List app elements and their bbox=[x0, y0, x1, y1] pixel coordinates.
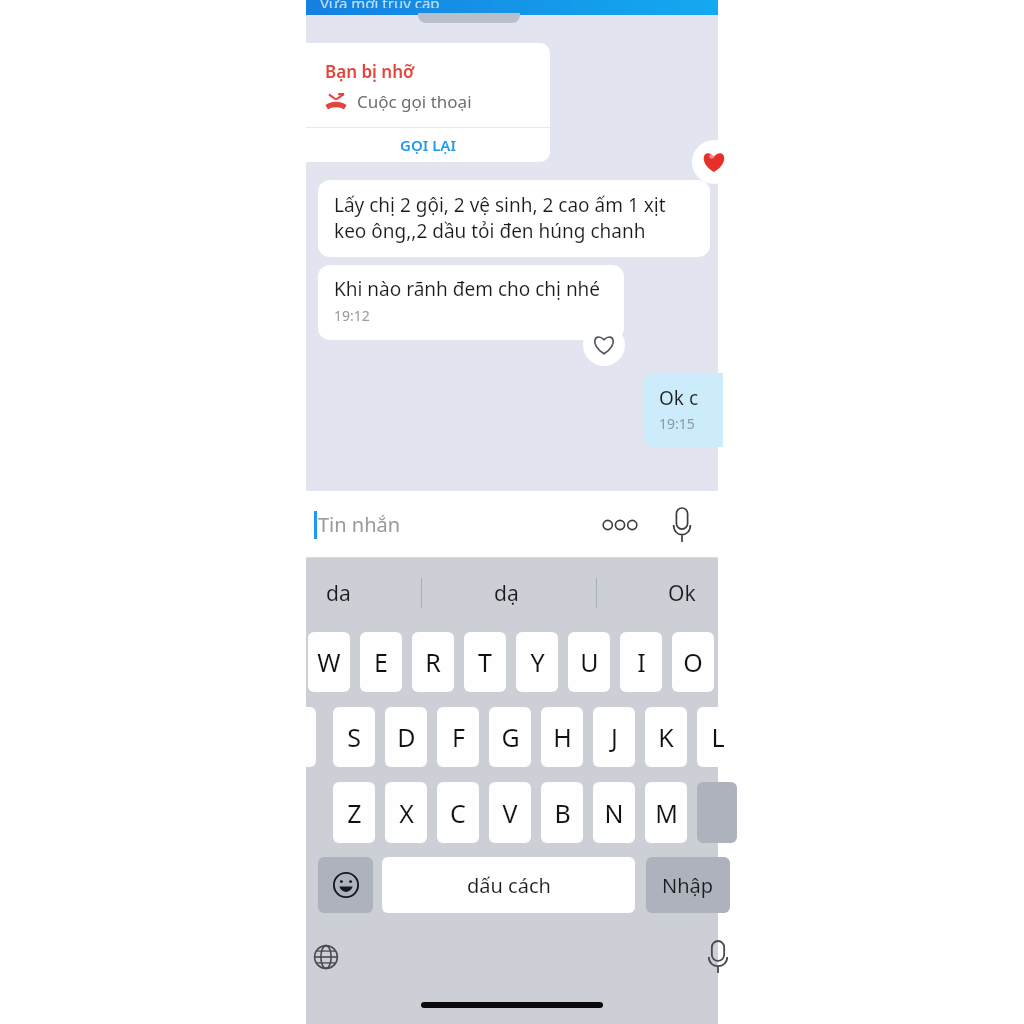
button[interactable]: Khi nào rãnh đem cho chị nhé bbox=[318, 265, 624, 340]
staticText: 19:15 bbox=[659, 414, 695, 433]
staticText: U bbox=[580, 645, 599, 679]
button[interactable]: I bbox=[620, 632, 662, 692]
button[interactable]: H bbox=[541, 707, 583, 767]
staticText: Nhập bbox=[662, 872, 714, 899]
staticText: E bbox=[374, 645, 388, 679]
button[interactable]: Nhập bbox=[646, 857, 730, 913]
button[interactable]: V bbox=[489, 782, 531, 843]
staticText: Z bbox=[347, 796, 362, 830]
button[interactable]: D bbox=[385, 707, 427, 767]
button[interactable]: Ok bbox=[668, 579, 696, 608]
button[interactable] bbox=[294, 707, 316, 767]
button[interactable]: X bbox=[385, 782, 427, 843]
button[interactable]: Emoji bbox=[318, 857, 373, 913]
button[interactable]: G bbox=[489, 707, 531, 767]
staticText: G bbox=[501, 720, 520, 754]
staticText: W bbox=[317, 645, 341, 679]
staticText: GỌI LẠI bbox=[400, 135, 456, 155]
button[interactable]: B bbox=[541, 782, 583, 843]
staticText: Bạn bị nhỡ bbox=[325, 60, 415, 83]
staticText: Khi nào rãnh đem cho chị nhé bbox=[334, 276, 601, 302]
staticText: O bbox=[683, 645, 703, 679]
button[interactable]: S bbox=[333, 707, 375, 767]
button[interactable]: Voice message bbox=[660, 503, 704, 547]
button[interactable]: E bbox=[360, 632, 402, 692]
staticText: D bbox=[397, 720, 416, 754]
staticText: K bbox=[658, 720, 674, 754]
staticText: R bbox=[425, 645, 441, 679]
staticText: Cuộc gọi thoại bbox=[357, 90, 472, 113]
staticText: 19:12 bbox=[334, 306, 370, 325]
button[interactable]: Y bbox=[516, 632, 558, 692]
button[interactable]: J bbox=[593, 707, 635, 767]
button[interactable]: GỌI LẠI bbox=[306, 128, 550, 162]
button[interactable]: C bbox=[437, 782, 479, 843]
staticText: B bbox=[554, 796, 571, 830]
button[interactable]: Heart reaction bbox=[692, 140, 736, 184]
button[interactable]: Change keyboard bbox=[302, 933, 350, 981]
staticText: H bbox=[553, 720, 572, 754]
button[interactable]: More options bbox=[598, 503, 642, 547]
button[interactable]: M bbox=[645, 782, 687, 843]
staticText: T bbox=[478, 645, 492, 679]
button[interactable]: N bbox=[593, 782, 635, 843]
button[interactable]: L bbox=[697, 707, 739, 767]
staticText: C bbox=[450, 796, 466, 830]
button[interactable]: Bạn bị nhỡ bbox=[306, 43, 550, 162]
staticText: I bbox=[637, 645, 646, 679]
staticText: V bbox=[502, 796, 518, 830]
staticText: Ok c bbox=[659, 385, 699, 411]
staticText: L bbox=[711, 720, 725, 754]
staticText: F bbox=[452, 720, 465, 754]
button[interactable]: Lấy chị 2 gội, 2 vệ sinh, 2 cao ấm 1 xịt… bbox=[318, 180, 710, 257]
staticText: dấu cách bbox=[467, 872, 551, 899]
staticText: Vừa mới truy cập bbox=[320, 0, 440, 8]
button[interactable]: F bbox=[437, 707, 479, 767]
staticText: N bbox=[604, 796, 624, 830]
button[interactable]: Z bbox=[333, 782, 375, 843]
button[interactable]: dấu cách bbox=[382, 857, 635, 913]
button[interactable]: dạ bbox=[494, 579, 519, 608]
button[interactable]: T bbox=[464, 632, 506, 692]
staticText: Tin nhắn bbox=[318, 511, 401, 538]
button[interactable]: Ok c bbox=[643, 373, 723, 447]
button[interactable]: O bbox=[672, 632, 714, 692]
staticText: J bbox=[611, 720, 618, 754]
button[interactable]: Like bbox=[583, 324, 625, 366]
button[interactable]: R bbox=[412, 632, 454, 692]
staticText: Y bbox=[530, 645, 545, 679]
button[interactable]: W bbox=[308, 632, 350, 692]
staticText: Lấy chị 2 gội, 2 vệ sinh, 2 cao ấm 1 xịt… bbox=[334, 192, 666, 244]
staticText: M bbox=[655, 796, 678, 830]
button[interactable]: Backspace bbox=[697, 782, 737, 843]
button[interactable]: Dictation bbox=[694, 933, 742, 981]
staticText: S bbox=[347, 720, 361, 754]
button[interactable]: da bbox=[326, 579, 351, 608]
button[interactable]: K bbox=[645, 707, 687, 767]
staticText: X bbox=[399, 796, 414, 830]
button[interactable]: U bbox=[568, 632, 610, 692]
